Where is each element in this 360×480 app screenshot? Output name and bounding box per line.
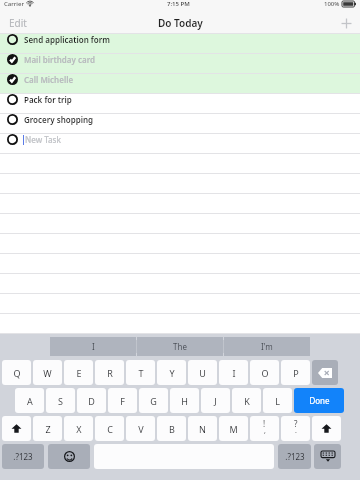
staticText: ? [294, 418, 298, 429]
button[interactable]: A [15, 388, 44, 413]
button[interactable]: O [250, 360, 279, 385]
staticText: A [27, 395, 33, 407]
staticText: L [275, 395, 280, 407]
staticText: The [173, 341, 187, 352]
staticText: N [199, 423, 206, 435]
button[interactable]: J [201, 388, 230, 413]
button[interactable]: ! [250, 416, 279, 441]
staticText: Send application form [24, 34, 110, 45]
button[interactable]: B [157, 416, 186, 441]
staticText: Y [169, 367, 175, 379]
staticText: W [43, 367, 52, 379]
staticText: Edit [9, 16, 27, 30]
staticText: P [293, 367, 299, 379]
staticText: 7:15 PM [167, 0, 190, 8]
button[interactable]: R [95, 360, 124, 385]
staticText: Do Today [158, 16, 203, 30]
button[interactable]: I [219, 360, 248, 385]
button[interactable]: .?123 [278, 444, 311, 469]
button[interactable]: Hide keyboard [314, 444, 341, 469]
staticText: J [214, 395, 217, 407]
button[interactable]: D [77, 388, 106, 413]
staticText: I [92, 341, 95, 352]
staticText: Grocery shopping [24, 114, 94, 125]
staticText: I'm [261, 341, 273, 352]
staticText: G [150, 395, 157, 407]
staticText: M [229, 423, 238, 435]
button[interactable]: Send application form [0, 34, 360, 54]
staticText: D [88, 395, 95, 407]
button[interactable]: Y [157, 360, 186, 385]
staticText: U [199, 367, 206, 379]
button[interactable]: E [64, 360, 93, 385]
button[interactable]: Edit [0, 13, 36, 33]
staticText: Call Michelle [24, 74, 74, 85]
button[interactable]: M [219, 416, 248, 441]
button[interactable]: The [137, 337, 223, 356]
button[interactable]: Add task [333, 15, 360, 32]
button[interactable]: N [188, 416, 217, 441]
staticText: H [181, 395, 188, 407]
button[interactable]: Done [294, 388, 344, 413]
staticText: I [232, 367, 236, 379]
button[interactable]: Call Michelle [0, 74, 360, 94]
button[interactable]: G [139, 388, 168, 413]
button[interactable]: Delete [312, 360, 338, 385]
button[interactable]: Q [2, 360, 31, 385]
button[interactable]: New Task [0, 134, 360, 154]
staticText: , [264, 426, 266, 436]
staticText: X [76, 423, 82, 435]
button[interactable]: P [281, 360, 310, 385]
staticText: Mail birthday card [24, 54, 95, 65]
staticText: .?123 [13, 451, 33, 462]
button[interactable]: U [188, 360, 217, 385]
staticText: .?123 [285, 451, 305, 462]
staticText: B [169, 423, 175, 435]
button[interactable]: T [126, 360, 155, 385]
button[interactable]: W [33, 360, 62, 385]
button[interactable]: .?123 [2, 444, 44, 469]
button[interactable]: Z [33, 416, 62, 441]
button[interactable]: H [170, 388, 199, 413]
staticText: V [138, 423, 144, 435]
staticText: O [261, 367, 269, 379]
staticText: C [107, 423, 113, 435]
staticText: . [295, 426, 297, 436]
button[interactable]: Emoji [48, 444, 90, 469]
staticText: Z [45, 423, 51, 435]
button[interactable]: Shift [2, 416, 31, 441]
staticText: S [58, 395, 63, 407]
staticText: R [107, 367, 113, 379]
button[interactable]: Pack for trip [0, 94, 360, 114]
staticText: K [244, 395, 250, 407]
button[interactable]: S [46, 388, 75, 413]
button[interactable]: X [64, 416, 93, 441]
button[interactable]: V [126, 416, 155, 441]
button[interactable]: Grocery shopping [0, 114, 360, 134]
staticText: Pack for trip [24, 94, 72, 105]
staticText: New Task [25, 134, 61, 145]
button[interactable]: Mail birthday card [0, 54, 360, 74]
button[interactable]: K [232, 388, 261, 413]
button[interactable]: I [50, 337, 136, 356]
button[interactable]: I'm [224, 337, 310, 356]
staticText: Q [13, 367, 21, 379]
staticText: E [76, 367, 82, 379]
button[interactable]: C [95, 416, 124, 441]
staticText: T [138, 367, 144, 379]
staticText: F [120, 395, 125, 407]
staticText: Carrier [4, 0, 24, 8]
button[interactable]: L [263, 388, 292, 413]
button[interactable]: Shift [312, 416, 341, 441]
staticText: ! [263, 418, 266, 429]
button[interactable]: ? [281, 416, 310, 441]
staticText: 100% [324, 0, 340, 8]
button[interactable]: F [108, 388, 137, 413]
staticText: Done [309, 395, 330, 406]
